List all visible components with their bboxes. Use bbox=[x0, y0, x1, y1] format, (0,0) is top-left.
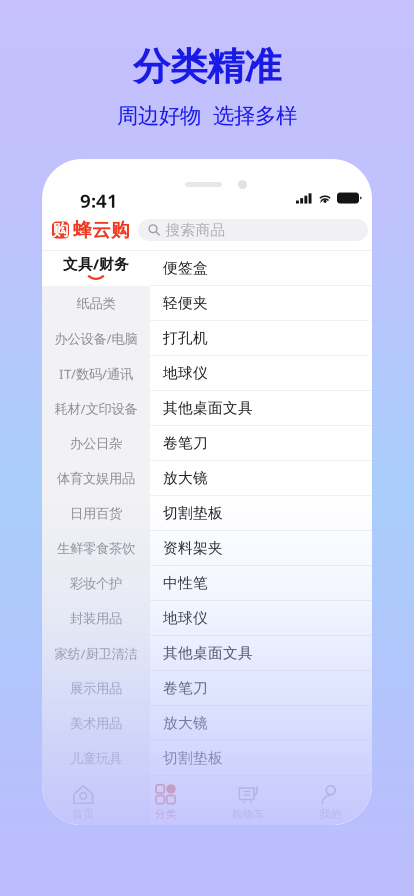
button[interactable]: 放大镜 bbox=[150, 706, 372, 741]
staticText: 体育文娱用品 bbox=[57, 470, 135, 487]
staticText: 蜂云购 bbox=[73, 218, 130, 241]
button[interactable]: 搜索商品 bbox=[138, 219, 368, 241]
button[interactable]: 封装用品 bbox=[42, 601, 150, 636]
staticText: 办公日杂 bbox=[70, 435, 122, 452]
staticText: 搜索商品 bbox=[165, 221, 225, 239]
staticText: 纸品类 bbox=[76, 295, 115, 312]
staticText: 展示用品 bbox=[70, 680, 122, 697]
button[interactable]: 生鲜零食茶饮 bbox=[42, 531, 150, 566]
button[interactable]: 分类 bbox=[124, 783, 207, 821]
button[interactable]: 耗材/文印设备 bbox=[42, 391, 150, 426]
staticText: 分类精准 bbox=[133, 44, 281, 90]
staticText: 家纺/厨卫清洁 bbox=[54, 645, 137, 662]
staticText: 打孔机 bbox=[163, 329, 208, 347]
button[interactable]: 其他桌面文具 bbox=[150, 391, 372, 426]
button[interactable]: 购 bbox=[52, 210, 130, 250]
staticText: 资料架夹 bbox=[163, 539, 223, 557]
staticText: 我的 bbox=[320, 807, 342, 820]
button[interactable]: 文具/财务 bbox=[42, 251, 150, 286]
staticText: 封装用品 bbox=[70, 610, 122, 627]
button[interactable]: 中性笔 bbox=[150, 566, 372, 601]
button[interactable]: IT/数码/通讯 bbox=[42, 356, 150, 391]
button[interactable]: 家纺/厨卫清洁 bbox=[42, 636, 150, 671]
button[interactable]: 卷笔刀 bbox=[150, 671, 372, 706]
button[interactable]: 体育文娱用品 bbox=[42, 461, 150, 496]
button[interactable]: 首页 bbox=[42, 783, 124, 821]
staticText: 首页 bbox=[72, 807, 94, 820]
staticText: 周边好物 选择多样 bbox=[117, 103, 297, 129]
staticText: 放大镜 bbox=[163, 469, 208, 487]
staticText: 放大镜 bbox=[163, 714, 208, 732]
staticText: 彩妆个护 bbox=[70, 575, 122, 592]
button[interactable]: 日用百货 bbox=[42, 496, 150, 531]
staticText: 分类 bbox=[155, 807, 177, 820]
button[interactable]: 其他桌面文具 bbox=[150, 636, 372, 671]
staticText: 9:41 bbox=[80, 188, 118, 213]
button[interactable]: 办公日杂 bbox=[42, 426, 150, 461]
button[interactable]: 纸品类 bbox=[42, 286, 150, 321]
staticText: 办公设备/电脑 bbox=[54, 330, 137, 347]
staticText: 切割垫板 bbox=[163, 749, 223, 767]
staticText: 其他桌面文具 bbox=[163, 399, 253, 417]
button[interactable]: 美术用品 bbox=[42, 706, 150, 741]
staticText: 便签盒 bbox=[163, 259, 208, 277]
staticText: 美术用品 bbox=[70, 715, 122, 732]
staticText: 购物车 bbox=[232, 807, 265, 820]
staticText: 文具/财务 bbox=[63, 254, 129, 273]
button[interactable]: 放大镜 bbox=[150, 461, 372, 496]
button[interactable]: 儿童玩具 bbox=[42, 741, 150, 776]
staticText: 生鲜零食茶饮 bbox=[57, 540, 135, 557]
staticText: 购 bbox=[52, 220, 68, 240]
staticText: 地球仪 bbox=[163, 609, 208, 627]
button[interactable]: 切割垫板 bbox=[150, 496, 372, 531]
staticText: 轻便夹 bbox=[163, 294, 208, 312]
staticText: 日用百货 bbox=[70, 505, 122, 522]
staticText: IT/数码/通讯 bbox=[59, 365, 133, 382]
button[interactable]: 展示用品 bbox=[42, 671, 150, 706]
staticText: 切割垫板 bbox=[163, 504, 223, 522]
button[interactable]: 资料架夹 bbox=[150, 531, 372, 566]
staticText: 地球仪 bbox=[163, 364, 208, 382]
staticText: 其他桌面文具 bbox=[163, 644, 253, 662]
button[interactable]: 切割垫板 bbox=[150, 741, 372, 776]
button[interactable]: 打孔机 bbox=[150, 321, 372, 356]
staticText: 中性笔 bbox=[163, 574, 208, 592]
staticText: 卷笔刀 bbox=[163, 679, 208, 697]
staticText: 儿童玩具 bbox=[70, 750, 122, 767]
staticText: 卷笔刀 bbox=[163, 434, 208, 452]
button[interactable]: 彩妆个护 bbox=[42, 566, 150, 601]
button[interactable]: 卷笔刀 bbox=[150, 426, 372, 461]
button[interactable]: 便签盒 bbox=[150, 251, 372, 286]
button[interactable]: 地球仪 bbox=[150, 356, 372, 391]
button[interactable]: 购物车 bbox=[207, 783, 289, 821]
staticText: 耗材/文印设备 bbox=[54, 400, 137, 417]
button[interactable]: 办公设备/电脑 bbox=[42, 321, 150, 356]
button[interactable]: 轻便夹 bbox=[150, 286, 372, 321]
button[interactable]: 我的 bbox=[289, 783, 372, 821]
button[interactable]: 地球仪 bbox=[150, 601, 372, 636]
